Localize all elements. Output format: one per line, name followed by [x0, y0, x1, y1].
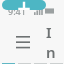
staticText: 9:41: [8, 5, 26, 17]
staticText: Inbox: [46, 22, 56, 64]
button[interactable]: Menu: [8, 28, 38, 58]
button[interactable]: Compose: [2, 0, 46, 10]
